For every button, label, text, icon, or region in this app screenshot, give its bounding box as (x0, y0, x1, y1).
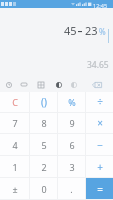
button[interactable]: 3 (58, 156, 85, 177)
button[interactable]: % (58, 92, 85, 112)
button[interactable]: 9 (58, 113, 85, 133)
button[interactable]: More options (67, 77, 80, 92)
button[interactable]: 1 (0, 156, 29, 177)
staticText: 3 (69, 161, 75, 173)
staticText: % (68, 96, 76, 108)
staticText: 5 (41, 139, 47, 151)
button[interactable]: 4 (0, 134, 29, 155)
staticText: + (97, 160, 103, 174)
button[interactable]: History (2, 77, 15, 92)
staticText: . (70, 183, 73, 195)
staticText: 7 (12, 117, 18, 129)
staticText: 2 (41, 161, 47, 173)
button[interactable]: Theme (52, 77, 65, 92)
button[interactable]: + (86, 156, 113, 177)
button[interactable]: . (58, 178, 85, 199)
button[interactable]: Backspace (88, 77, 106, 92)
staticText: C (12, 96, 18, 108)
button[interactable]: ± (0, 178, 29, 199)
button[interactable]: 2 (30, 156, 57, 177)
button[interactable]: 6 (58, 134, 85, 155)
staticText: % (99, 26, 106, 37)
staticText: = (97, 182, 103, 196)
button[interactable]: = (86, 178, 113, 199)
staticText: 45 (64, 23, 77, 38)
staticText: 6 (69, 139, 75, 151)
button[interactable]: ÷ (86, 92, 113, 112)
staticText: 1 (12, 161, 18, 173)
button[interactable]: C (0, 92, 29, 112)
staticText: − (97, 138, 103, 152)
staticText: ÷ (97, 95, 103, 109)
button[interactable]: Unit converter (34, 77, 47, 92)
staticText: 4 (12, 139, 18, 151)
staticText: 34.65 (87, 59, 109, 71)
staticText: 23 (85, 23, 98, 38)
staticText: 9 (69, 117, 75, 129)
staticText: () (41, 95, 47, 109)
staticText: × (97, 116, 103, 130)
button[interactable]: () (30, 92, 57, 112)
staticText: 0 (41, 183, 47, 195)
staticText: 12:45 (93, 2, 108, 9)
button[interactable]: × (86, 113, 113, 133)
button[interactable]: 0 (30, 178, 57, 199)
button[interactable]: Calculator mode (17, 77, 30, 92)
button[interactable]: 7 (0, 113, 29, 133)
button[interactable]: − (86, 134, 113, 155)
button[interactable]: 5 (30, 134, 57, 155)
staticText: ± (12, 183, 18, 195)
button[interactable]: 8 (30, 113, 57, 133)
staticText: 8 (41, 117, 47, 129)
